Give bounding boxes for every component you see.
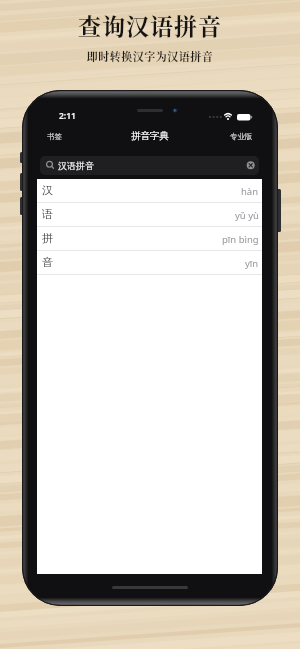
staticText: 音 <box>42 255 53 269</box>
staticText: 专业版 <box>230 132 253 141</box>
button[interactable]: 拼 <box>37 227 262 251</box>
staticText: 拼 <box>42 231 53 245</box>
staticText: yīn <box>245 257 259 270</box>
staticText: 拼音字典 <box>22 130 278 142</box>
button[interactable]: 书签 <box>40 131 80 145</box>
button[interactable]: 音 <box>37 251 262 275</box>
staticText: 书签 <box>47 132 62 141</box>
staticText: 2:11 <box>59 110 76 122</box>
staticText: 查询汉语拼音 <box>0 9 300 42</box>
button[interactable]: 语 <box>37 203 262 227</box>
staticText: pīn bìng <box>222 233 259 246</box>
staticText: 汉语拼音 <box>58 160 94 171</box>
staticText: yǔ yù <box>235 209 259 222</box>
staticText: 汉 <box>42 183 53 197</box>
button[interactable]: 汉语拼音 <box>40 156 259 175</box>
button[interactable]: 汉 <box>37 179 262 203</box>
staticText: 语 <box>42 207 53 221</box>
button[interactable]: 专业版 <box>222 131 262 145</box>
staticText: hàn <box>241 185 259 198</box>
staticText: 即时转换汉字为汉语拼音 <box>0 48 300 64</box>
